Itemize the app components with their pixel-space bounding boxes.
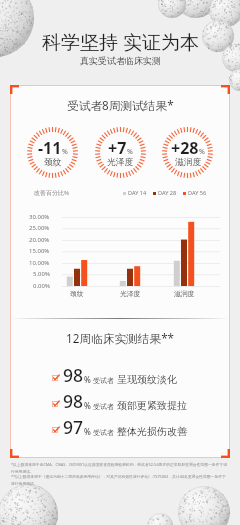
staticText: DAY 14 [128, 189, 147, 197]
staticText: % [84, 426, 91, 437]
staticText: **以上数据来源于《通过为期十二周的临床使用评估》，对其产品有效性进行评估》-T… [11, 474, 229, 486]
staticText: 科学坚持 实证为本 [42, 29, 199, 55]
staticText: 0.00% [33, 282, 50, 290]
staticText: 20.00% [29, 236, 50, 244]
staticText: +7 [108, 137, 127, 159]
staticText: 5.00% [33, 270, 50, 278]
staticText: 受试者 [93, 376, 114, 385]
staticText: 受试者8周测试结果* [67, 97, 174, 113]
staticText: 30.00% [29, 213, 50, 221]
staticText: 真实受试者临床实测 [80, 55, 161, 66]
staticText: 颈部更紧致提拉 [117, 399, 187, 412]
staticText: 15.00% [29, 247, 50, 255]
staticText: % [84, 400, 91, 411]
staticText: 12周临床实测结果** [66, 330, 175, 346]
staticText: 滋润度 [174, 289, 195, 298]
staticText: 呈现颈纹淡化 [117, 373, 177, 386]
staticText: 25.00% [29, 224, 50, 232]
staticText: 98 [63, 363, 84, 387]
staticText: % [84, 374, 91, 385]
staticText: 受试者 [93, 428, 114, 437]
staticText: 改善百分比% [34, 189, 69, 197]
staticText: 颈纹 [70, 289, 84, 298]
staticText: 97 [63, 415, 84, 439]
staticText: 10.00% [29, 259, 50, 267]
staticText: 光泽度 [107, 157, 134, 168]
staticText: % [62, 147, 68, 157]
staticText: 光泽度 [120, 289, 141, 298]
staticText: % [127, 147, 133, 157]
staticText: *以上数据来源于由CMA、CNAS、ISO9001认证及国家资质检测检测机构，受… [11, 462, 229, 474]
staticText: 整体光损伤改善 [117, 425, 187, 438]
staticText: 受试者 [93, 402, 114, 411]
staticText: 98 [63, 389, 84, 413]
staticText: % [199, 147, 205, 157]
staticText: 颈纹 [44, 157, 62, 168]
staticText: DAY 56 [188, 189, 207, 197]
staticText: +28 [171, 137, 199, 159]
staticText: 滋润度 [175, 157, 202, 168]
staticText: DAY 28 [158, 189, 177, 197]
staticText: -11 [38, 137, 62, 159]
